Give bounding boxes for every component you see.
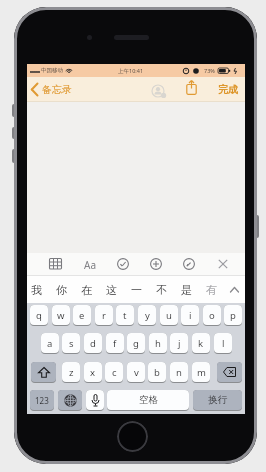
staticText: 你 xyxy=(56,283,67,297)
staticText: 是 xyxy=(181,283,192,297)
button[interactable]: e xyxy=(73,305,91,325)
staticText: 有 xyxy=(206,283,217,297)
button[interactable]: l xyxy=(214,333,232,353)
button[interactable]: b xyxy=(148,362,166,382)
staticText: 这 xyxy=(106,283,117,297)
staticText: 73% xyxy=(204,67,215,74)
staticText: 123 xyxy=(35,395,49,406)
staticText: s xyxy=(69,337,74,350)
staticText: o xyxy=(209,309,215,322)
button[interactable]: 换行 xyxy=(193,390,242,410)
button[interactable]: n xyxy=(170,362,188,382)
button[interactable]: i xyxy=(181,305,199,325)
button[interactable]: h xyxy=(149,333,167,353)
staticText: k xyxy=(198,337,204,350)
staticText: c xyxy=(112,366,117,379)
staticText: u xyxy=(166,309,172,322)
button[interactable] xyxy=(183,258,195,270)
staticText: h xyxy=(155,337,161,350)
button[interactable] xyxy=(218,259,228,269)
button[interactable]: s xyxy=(62,333,80,353)
button[interactable]: q xyxy=(30,305,48,325)
staticText: 上午10:41 xyxy=(118,67,144,75)
button[interactable] xyxy=(117,258,129,270)
staticText: l xyxy=(222,337,225,350)
staticText: i xyxy=(189,309,192,322)
button[interactable]: 在 xyxy=(77,276,95,303)
staticText: p xyxy=(230,309,236,322)
button[interactable]: 123 xyxy=(30,390,54,410)
button[interactable]: v xyxy=(127,362,145,382)
button[interactable]: 完成 xyxy=(214,77,242,101)
button[interactable]: 空格 xyxy=(107,390,189,410)
staticText: 我 xyxy=(31,283,42,297)
staticText: y xyxy=(145,309,150,322)
button[interactable]: c xyxy=(105,362,123,382)
staticText: 不 xyxy=(156,283,167,297)
staticText: b xyxy=(154,366,160,379)
staticText: m xyxy=(197,366,206,379)
staticText: 备忘录 xyxy=(42,83,72,96)
button[interactable]: d xyxy=(84,333,102,353)
staticText: 空格 xyxy=(139,394,158,406)
staticText: a xyxy=(47,337,53,350)
button[interactable] xyxy=(31,362,56,382)
staticText: g xyxy=(133,337,139,350)
button[interactable] xyxy=(150,258,162,270)
staticText: 中国移动 xyxy=(41,67,63,74)
staticText: 在 xyxy=(81,283,92,297)
button[interactable]: 是 xyxy=(177,276,195,303)
button[interactable]: y xyxy=(138,305,156,325)
staticText: 一 xyxy=(131,283,142,297)
staticText: x xyxy=(90,366,96,379)
button[interactable]: f xyxy=(106,333,124,353)
staticText: f xyxy=(113,337,117,350)
staticText: z xyxy=(69,366,74,379)
staticText: t xyxy=(123,309,127,322)
button[interactable]: o xyxy=(203,305,221,325)
button[interactable]: a xyxy=(41,333,59,353)
button[interactable] xyxy=(217,362,242,382)
staticText: 完成 xyxy=(218,83,238,96)
button[interactable]: 备忘录 xyxy=(29,77,79,101)
button[interactable] xyxy=(117,421,148,452)
button[interactable] xyxy=(58,390,82,410)
staticText: r xyxy=(102,309,106,322)
button[interactable] xyxy=(224,276,245,303)
button[interactable]: Aa xyxy=(82,253,98,276)
button[interactable]: 这 xyxy=(102,276,120,303)
button[interactable]: w xyxy=(52,305,70,325)
button[interactable]: t xyxy=(116,305,134,325)
staticText: v xyxy=(134,366,139,379)
staticText: w xyxy=(57,309,65,322)
staticText: j xyxy=(178,337,181,350)
staticText: d xyxy=(90,337,96,350)
button[interactable]: 不 xyxy=(152,276,170,303)
button[interactable]: x xyxy=(84,362,102,382)
button[interactable]: 有 xyxy=(202,276,220,303)
staticText: n xyxy=(176,366,182,379)
staticText: q xyxy=(36,309,42,322)
button[interactable]: 我 xyxy=(27,276,45,303)
button[interactable]: 一 xyxy=(127,276,145,303)
button[interactable]: 你 xyxy=(52,276,70,303)
button[interactable] xyxy=(86,390,104,410)
button[interactable] xyxy=(49,258,62,270)
button[interactable]: z xyxy=(62,362,80,382)
button[interactable] xyxy=(151,84,167,98)
button[interactable] xyxy=(186,80,197,95)
staticText: 换行 xyxy=(208,394,227,406)
staticText: Aa xyxy=(84,258,96,272)
staticText: e xyxy=(79,309,85,322)
button[interactable]: p xyxy=(224,305,242,325)
button[interactable]: j xyxy=(170,333,188,353)
button[interactable]: r xyxy=(95,305,113,325)
button[interactable]: m xyxy=(192,362,210,382)
button[interactable]: k xyxy=(192,333,210,353)
button[interactable]: g xyxy=(127,333,145,353)
button[interactable]: u xyxy=(160,305,178,325)
